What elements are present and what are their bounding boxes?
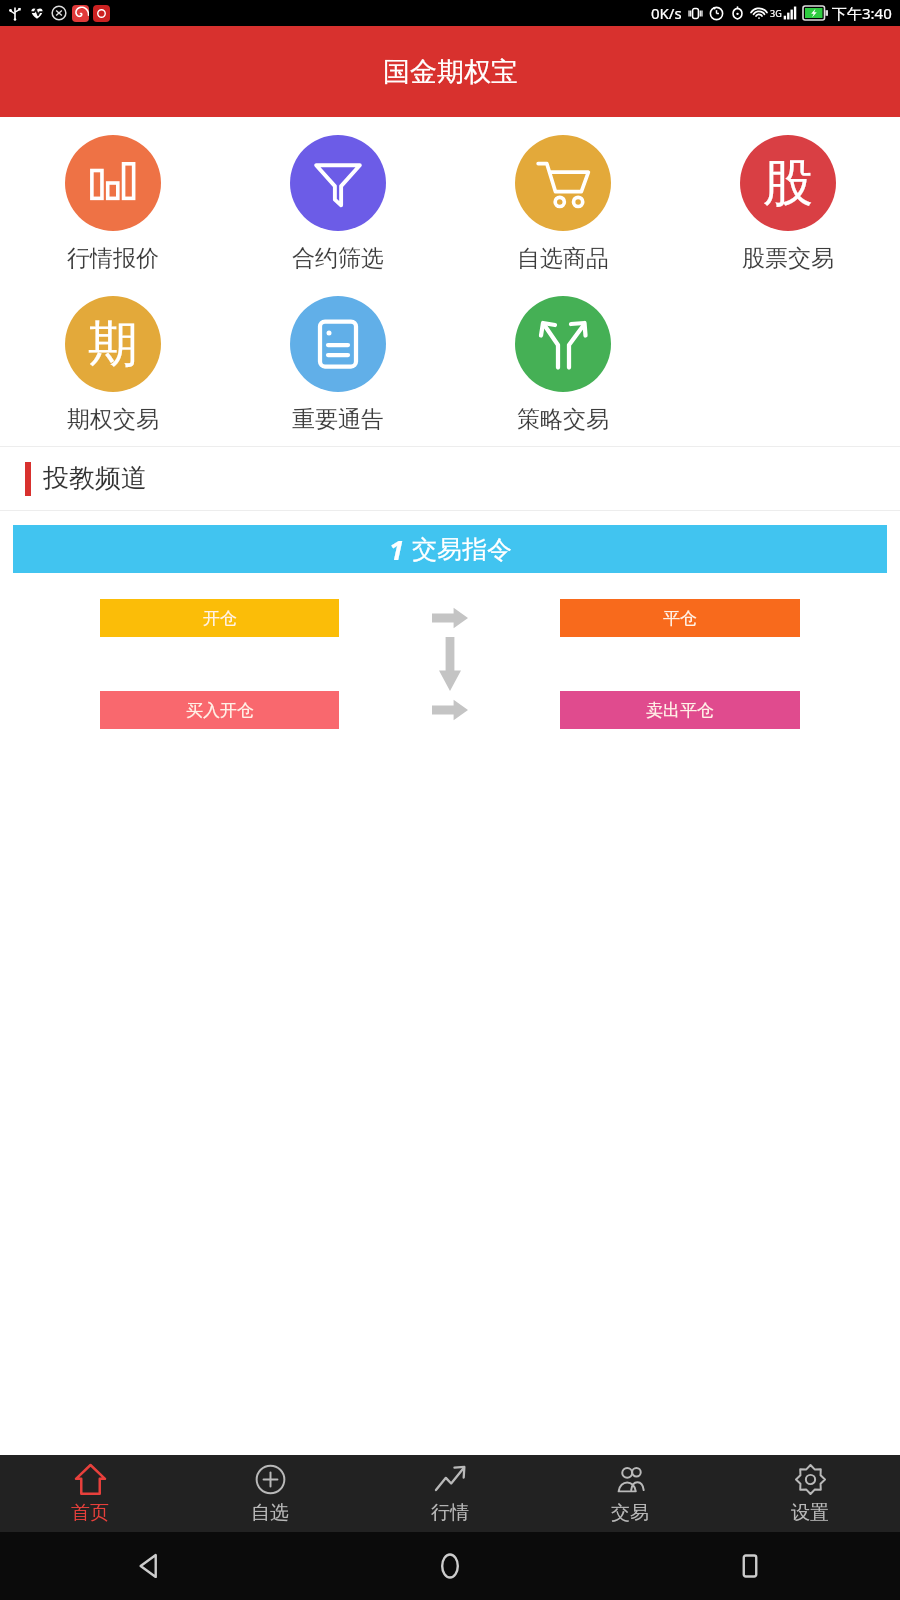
button[interactable]: Back	[0, 1532, 300, 1600]
staticText: 重要通告	[292, 405, 384, 434]
staticText: 自选商品	[517, 244, 609, 273]
button[interactable]: 股	[675, 133, 900, 275]
button[interactable]: 自选	[180, 1455, 360, 1532]
staticText: 下午3:40	[832, 3, 892, 23]
staticText: 0K/s	[651, 3, 682, 23]
staticText: 3G	[770, 7, 782, 19]
staticText: 自选	[251, 1501, 289, 1525]
button[interactable]: Home	[300, 1532, 600, 1600]
staticText: 卖出平仓	[646, 700, 714, 721]
button[interactable]: 期	[0, 294, 225, 436]
staticText: 投教频道	[43, 462, 147, 495]
staticText: 设置	[791, 1501, 829, 1525]
button[interactable]: 投教频道	[0, 447, 900, 510]
staticText: 策略交易	[517, 405, 609, 434]
button[interactable]: 自选商品	[450, 133, 675, 275]
staticText: 合约筛选	[292, 244, 384, 273]
staticText: 开仓	[203, 608, 237, 629]
staticText: 股	[763, 152, 813, 215]
staticText: 期权交易	[67, 405, 159, 434]
staticText: 1	[389, 531, 404, 568]
staticText: 国金期权宝	[383, 55, 518, 89]
staticText: 平仓	[663, 608, 697, 629]
staticText: 期	[88, 313, 138, 376]
button[interactable]: 合约筛选	[225, 133, 450, 275]
staticText: 交易	[611, 1501, 649, 1525]
button[interactable]: 行情报价	[0, 133, 225, 275]
staticText: 行情报价	[67, 244, 159, 273]
staticText: 首页	[71, 1501, 109, 1525]
staticText: 交易指令	[412, 534, 512, 565]
button[interactable]: 1	[13, 525, 887, 573]
button[interactable]: 首页	[0, 1455, 180, 1532]
staticText: 买入开仓	[186, 700, 254, 721]
button[interactable]: 设置	[720, 1455, 900, 1532]
button[interactable]: 重要通告	[225, 294, 450, 436]
button[interactable]: 行情	[360, 1455, 540, 1532]
button[interactable]: Recents	[600, 1532, 900, 1600]
button[interactable]: 交易	[540, 1455, 720, 1532]
button[interactable]: 策略交易	[450, 294, 675, 436]
staticText: 行情	[431, 1501, 469, 1525]
staticText: 股票交易	[742, 244, 834, 273]
